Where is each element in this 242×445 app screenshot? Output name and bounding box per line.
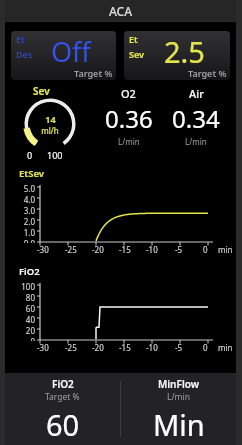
staticText: Sev [129, 48, 144, 60]
staticText: -5 [175, 244, 183, 255]
staticText: Target % [45, 391, 80, 403]
staticText: MinFlow [158, 377, 199, 391]
button[interactable]: Air [162, 84, 230, 164]
staticText: EtSev [19, 167, 44, 180]
staticText: 0.0 [16, 238, 35, 243]
staticText: L/min [185, 136, 207, 147]
button[interactable]: ACA [5, 0, 236, 22]
button[interactable]: MinFlow [121, 373, 236, 445]
staticText: -10 [146, 342, 158, 353]
staticText: 2.0 [16, 216, 35, 227]
staticText: -25 [65, 342, 77, 353]
button[interactable]: FiO2 [5, 373, 120, 445]
staticText: 0 [16, 336, 35, 341]
staticText: 0 [27, 149, 33, 161]
staticText: -5 [175, 342, 183, 353]
staticText: ml/h [41, 125, 59, 136]
staticText: min [218, 342, 233, 353]
button[interactable]: Et [124, 31, 230, 80]
button[interactable]: FiO2 [5, 264, 236, 362]
staticText: 80 [16, 292, 35, 303]
staticText: -10 [146, 244, 158, 255]
staticText: Et [16, 33, 25, 45]
staticText: L/min [118, 136, 140, 147]
staticText: 3.0 [16, 205, 35, 216]
staticText: 5.0 [16, 183, 35, 194]
staticText: -30 [37, 244, 49, 255]
button[interactable]: Sev [11, 84, 95, 164]
staticText: -15 [119, 342, 131, 353]
staticText: 14 [45, 113, 56, 125]
staticText: 1.0 [16, 227, 35, 238]
staticText: Air [189, 86, 204, 101]
staticText: Et [129, 33, 138, 45]
staticText: 100 [47, 149, 63, 161]
staticText: 100 [16, 281, 35, 292]
staticText: Off [51, 33, 91, 70]
staticText: -30 [37, 342, 49, 353]
staticText: Target % [74, 67, 113, 79]
staticText: ACA [109, 3, 133, 19]
button[interactable]: O2 [95, 84, 162, 164]
staticText: 60 [46, 405, 80, 444]
button[interactable]: EtSev [5, 166, 236, 264]
button[interactable]: Et [11, 31, 116, 80]
staticText: Des [16, 48, 33, 60]
staticText: -20 [92, 244, 104, 255]
staticText: Sev [33, 84, 50, 98]
staticText: -15 [119, 244, 131, 255]
staticText: 2.5 [164, 32, 205, 71]
staticText: L/min [167, 391, 191, 403]
staticText: -20 [92, 342, 104, 353]
staticText: O2 [121, 86, 136, 101]
staticText: 60 [16, 303, 35, 314]
staticText: Target % [188, 67, 227, 79]
staticText: 0 [203, 342, 208, 353]
staticText: FiO2 [19, 265, 40, 278]
staticText: 4.0 [16, 194, 35, 205]
staticText: FiO2 [52, 377, 74, 391]
staticText: 0.34 [172, 102, 220, 135]
staticText: 0.36 [105, 102, 153, 135]
staticText: -25 [65, 244, 77, 255]
staticText: 20 [16, 325, 35, 336]
staticText: 40 [16, 314, 35, 325]
staticText: min [218, 244, 233, 255]
staticText: Min [153, 405, 205, 444]
staticText: 0 [203, 244, 208, 255]
